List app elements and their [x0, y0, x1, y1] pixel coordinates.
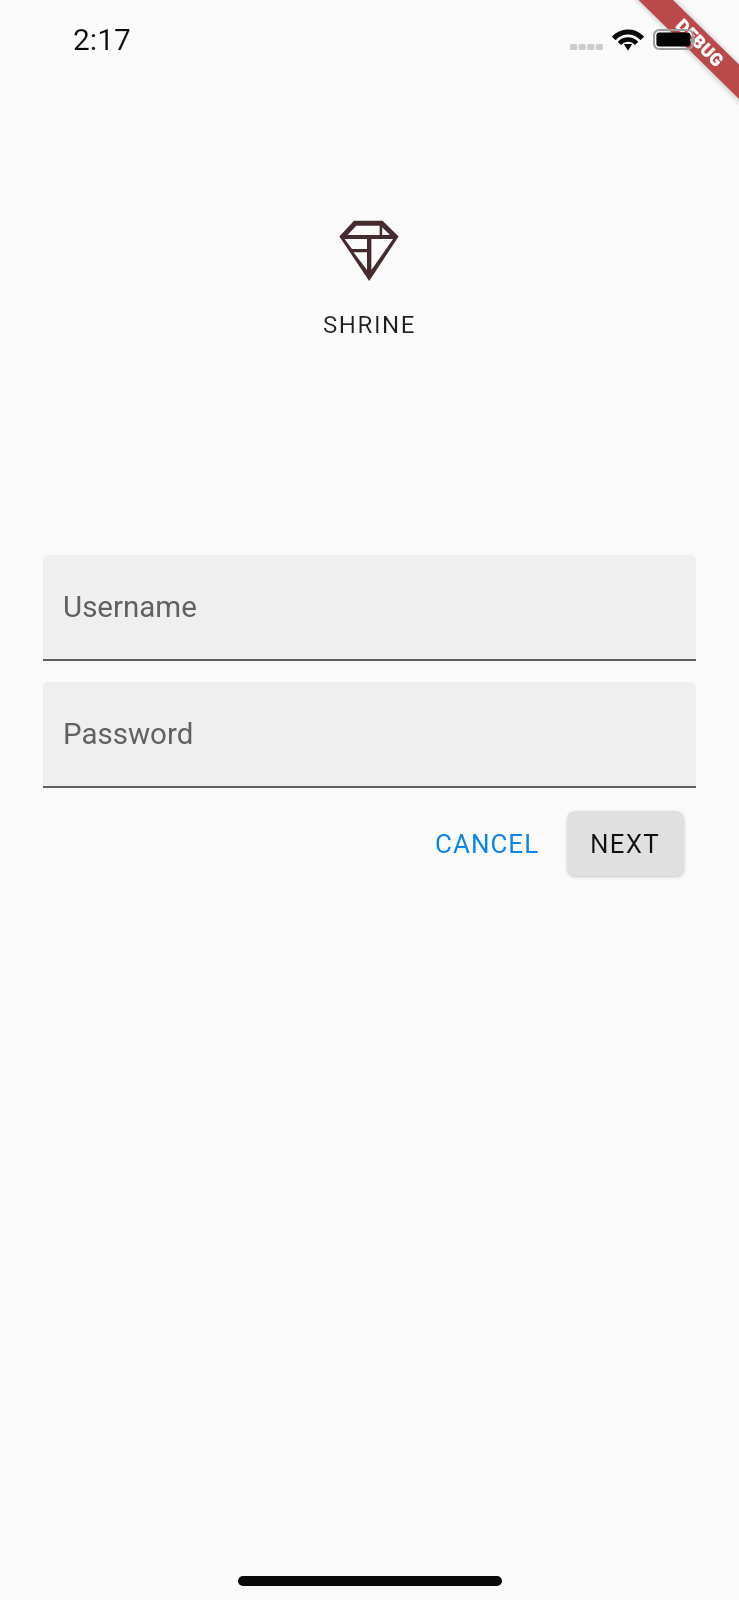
button[interactable]: Password [43, 682, 696, 788]
staticText: 2:17 [73, 22, 131, 57]
staticText: Username [63, 590, 197, 625]
staticText: NEXT [590, 829, 660, 859]
staticText: Password [63, 717, 194, 752]
staticText: SHRINE [323, 311, 417, 339]
staticText: CANCEL [435, 829, 540, 859]
button[interactable]: NEXT [567, 811, 684, 876]
button[interactable]: CANCEL [414, 815, 552, 873]
button[interactable]: Username [43, 555, 696, 661]
